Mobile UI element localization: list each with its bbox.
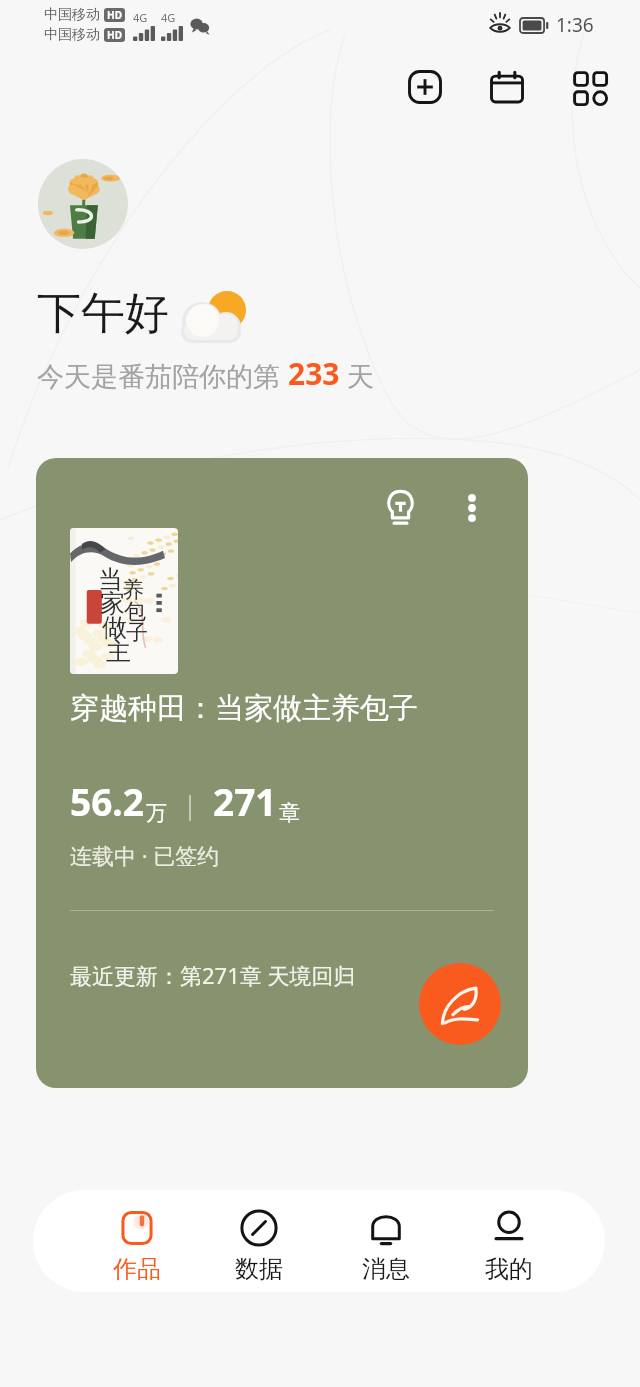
button[interactable]: Inspiration: [373, 481, 427, 535]
button[interactable]: Book cover: 穿越种田：当家做主养包子: [70, 528, 178, 674]
button[interactable]: Add: [394, 56, 456, 118]
staticText: 4G: [161, 10, 176, 25]
button[interactable]: 我的: [460, 1198, 558, 1284]
button[interactable]: More options: [450, 480, 494, 536]
staticText: 家: [100, 588, 125, 619]
staticText: 子: [126, 619, 148, 647]
staticText: 中国移动: [44, 26, 100, 44]
staticText: 中国移动: [44, 6, 100, 24]
staticText: 271: [213, 776, 277, 826]
staticText: 1:36: [556, 12, 594, 38]
staticText: 56.2: [70, 776, 144, 826]
staticText: 当: [98, 564, 123, 595]
staticText: 穿越种田：当家做主养包子: [70, 690, 418, 727]
button[interactable]: 数据: [210, 1198, 308, 1284]
button[interactable]: Inspiration: [36, 458, 528, 1088]
button[interactable]: Calendar: [476, 56, 538, 118]
staticText: 天: [340, 357, 375, 394]
staticText: 养: [122, 576, 144, 604]
button[interactable]: 消息: [337, 1198, 435, 1284]
staticText: 最近更新：第271章 天境回归: [70, 960, 356, 990]
staticText: HD: [107, 8, 122, 22]
staticText: 今天是番茄陪你的第: [37, 357, 288, 394]
button[interactable]: 作品: [88, 1198, 186, 1284]
staticText: 我的: [485, 1254, 533, 1284]
staticText: 连载中 · 已签约: [70, 840, 220, 870]
staticText: 万: [146, 800, 167, 826]
button[interactable]: Profile avatar: [38, 159, 128, 249]
staticText: 233: [288, 353, 340, 394]
staticText: 消息: [362, 1254, 410, 1284]
staticText: 包: [124, 598, 146, 626]
staticText: 做: [102, 612, 127, 643]
staticText: 主: [106, 636, 131, 667]
staticText: HD: [107, 28, 122, 42]
staticText: 下午好: [37, 286, 169, 341]
button[interactable]: Write new chapter: [419, 963, 501, 1045]
staticText: 章: [279, 800, 300, 826]
staticText: 数据: [235, 1254, 283, 1284]
staticText: 作品: [113, 1254, 161, 1284]
button[interactable]: Grid menu: [558, 56, 620, 118]
staticText: 4G: [133, 10, 148, 25]
